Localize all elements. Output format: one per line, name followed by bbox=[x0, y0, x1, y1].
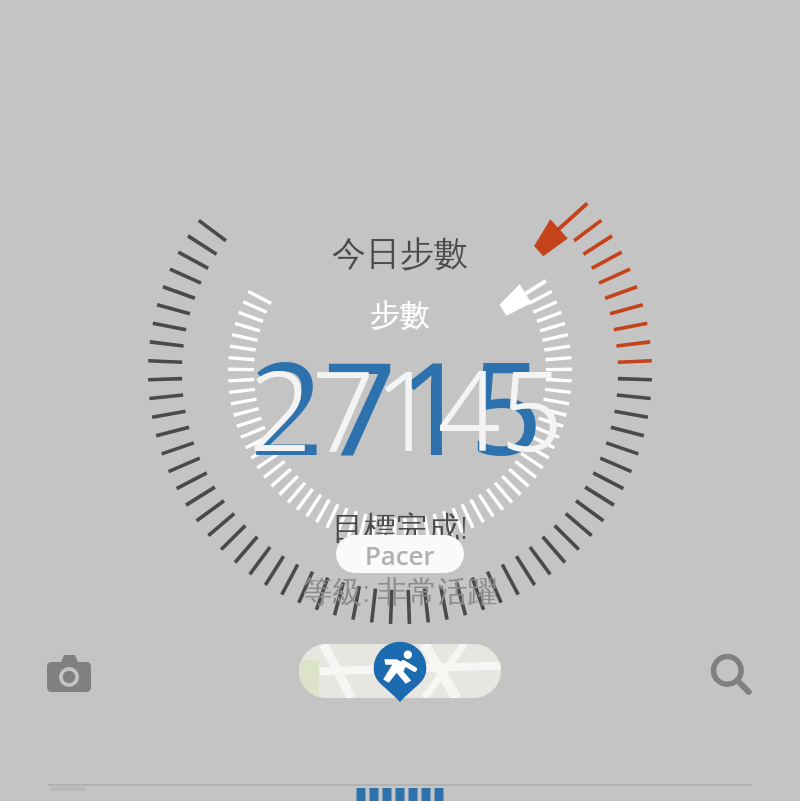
staticText: Pacer bbox=[365, 537, 435, 572]
staticText: 2715 bbox=[250, 318, 543, 492]
staticText: 27145 bbox=[249, 333, 564, 483]
staticText: 等級: 非常活躍 bbox=[302, 570, 498, 611]
button[interactable]: Camera bbox=[38, 644, 100, 706]
button[interactable]: Pacer bbox=[336, 535, 464, 573]
button[interactable]: Search bbox=[700, 644, 762, 706]
staticText: 今日步數 bbox=[332, 232, 468, 275]
button[interactable]: Map bbox=[299, 640, 501, 702]
staticText: 目標完成! bbox=[332, 505, 468, 549]
staticText: 步數 bbox=[370, 296, 430, 334]
